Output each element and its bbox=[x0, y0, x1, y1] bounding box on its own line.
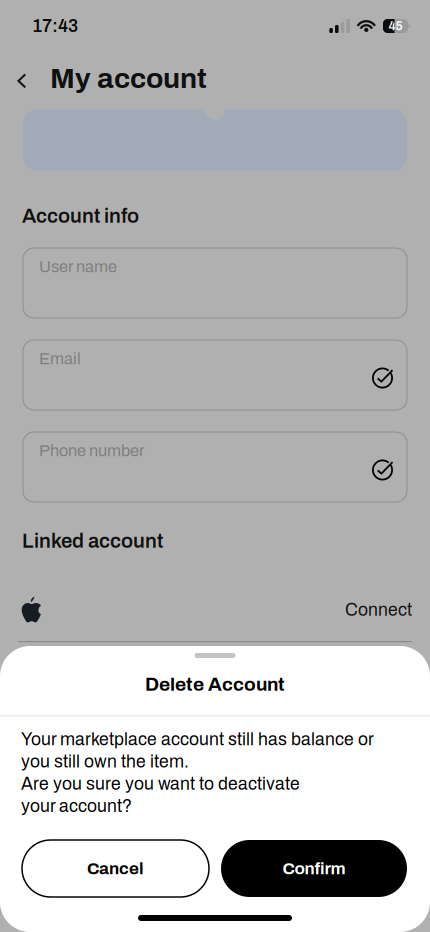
staticText: Your marketplace account still has balan… bbox=[21, 730, 374, 749]
staticText: Linked account bbox=[22, 530, 163, 552]
staticText: Are you sure you want to deactivate bbox=[21, 774, 300, 793]
button[interactable]: Confirm bbox=[221, 840, 407, 897]
staticText: Email bbox=[39, 350, 81, 368]
button[interactable]: Connect bbox=[20, 593, 412, 627]
staticText: you still own the item. bbox=[21, 752, 189, 771]
staticText: Cancel bbox=[87, 859, 144, 878]
button[interactable]: Cancel bbox=[22, 840, 209, 897]
staticText: User name bbox=[39, 258, 117, 276]
staticText: My account bbox=[50, 63, 207, 94]
staticText: your account? bbox=[21, 797, 132, 816]
staticText: 17:43 bbox=[32, 16, 78, 36]
staticText: Account info bbox=[22, 205, 139, 227]
staticText: 45 bbox=[388, 19, 402, 33]
staticText: Connect bbox=[345, 600, 412, 619]
staticText: Confirm bbox=[282, 859, 345, 878]
button[interactable]: Back bbox=[8, 64, 36, 98]
staticText: Phone number bbox=[39, 442, 144, 460]
staticText: Delete Account bbox=[145, 674, 285, 695]
